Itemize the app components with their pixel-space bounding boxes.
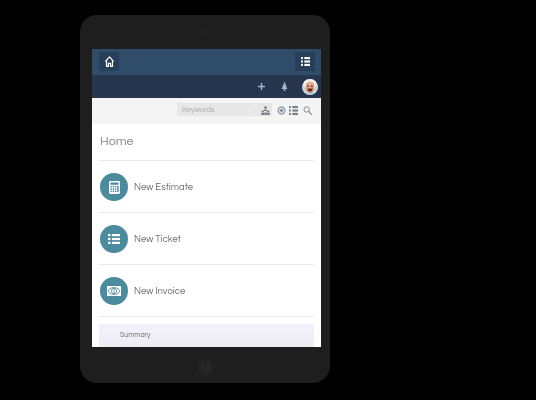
button[interactable]: Menu	[295, 52, 315, 71]
button[interactable]: View list	[287, 103, 299, 117]
staticText: New Ticket	[134, 234, 181, 244]
staticText: Summary	[120, 331, 151, 338]
button[interactable]: Keywords	[177, 103, 272, 116]
button[interactable]: New Ticket	[92, 213, 321, 264]
button[interactable]: New Estimate	[92, 161, 321, 212]
button[interactable]: Home	[99, 52, 119, 71]
button[interactable]: Notifications	[275, 77, 293, 95]
button[interactable]: Summary	[99, 324, 314, 347]
button[interactable]: Search	[301, 103, 313, 117]
button[interactable]: Contacts	[259, 103, 271, 117]
button[interactable]: Target	[275, 103, 287, 117]
button[interactable]: New Invoice	[92, 265, 321, 316]
button[interactable]: Profile	[301, 78, 318, 95]
staticText: New Invoice	[134, 286, 186, 296]
staticText: Home	[100, 135, 134, 148]
button[interactable]: Add	[252, 77, 270, 95]
staticText: Keywords	[182, 106, 215, 114]
staticText: New Estimate	[134, 182, 193, 192]
button[interactable]: Refresh	[247, 103, 259, 117]
